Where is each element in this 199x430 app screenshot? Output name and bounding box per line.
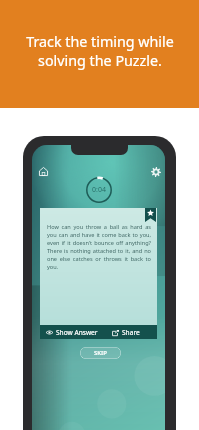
button[interactable]: SKIP xyxy=(80,347,121,359)
button[interactable]: Show Answer xyxy=(46,328,98,337)
button[interactable]: Home xyxy=(34,162,52,180)
staticText: How can you throw a ball as hard as you … xyxy=(47,223,151,271)
button[interactable]: Share xyxy=(112,328,140,337)
button[interactable]: Bookmark xyxy=(145,208,156,222)
staticText: 0:04 xyxy=(92,185,106,195)
staticText: Share xyxy=(122,328,140,337)
staticText: Show Answer xyxy=(56,328,98,337)
staticText: Track the timing while solving the Puzzl… xyxy=(26,32,174,70)
button[interactable]: Settings xyxy=(147,163,165,181)
staticText: SKIP xyxy=(94,349,107,357)
